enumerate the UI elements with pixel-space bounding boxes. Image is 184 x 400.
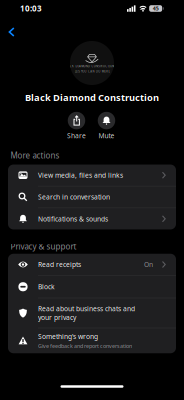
staticText: Notifications & sounds xyxy=(38,214,108,223)
button[interactable]: Search in conversation xyxy=(8,186,176,208)
staticText: On xyxy=(144,260,153,269)
button[interactable]: Share xyxy=(67,112,86,140)
button[interactable]: Notifications & sounds xyxy=(8,208,176,229)
staticText: LETS YOU CAN DO MORE xyxy=(75,70,109,73)
staticText: More actions xyxy=(10,150,59,161)
staticText: Give feedback and report conversation xyxy=(38,342,132,349)
staticText: Something's wrong xyxy=(38,332,98,341)
staticText: Mute xyxy=(98,131,114,140)
button[interactable]: Something's wrong xyxy=(8,328,176,353)
button[interactable]: Read receipts xyxy=(8,254,176,275)
button[interactable]: Mute xyxy=(98,112,115,140)
staticText: Share xyxy=(67,131,86,140)
button[interactable]: Back xyxy=(8,27,15,37)
staticText: Read receipts xyxy=(38,260,81,269)
staticText: Privacy & support xyxy=(10,241,76,252)
staticText: Block xyxy=(38,282,55,291)
button[interactable]: Read about business chats and your priva… xyxy=(8,298,176,328)
staticText: 10:03 xyxy=(20,3,42,14)
staticText: Read about business chats and your priva… xyxy=(38,304,135,322)
button[interactable]: Block xyxy=(8,276,176,298)
staticText: Search in conversation xyxy=(38,193,110,201)
staticText: 45 xyxy=(153,5,159,12)
staticText: Black Diamond Construction xyxy=(25,91,159,104)
staticText: CK DIAMOND CONSTRUCTION xyxy=(70,64,114,68)
button[interactable]: View media, files and links xyxy=(8,165,176,186)
staticText: View media, files and links xyxy=(38,171,123,180)
